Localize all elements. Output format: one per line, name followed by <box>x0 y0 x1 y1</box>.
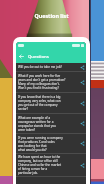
button[interactable]: Back <box>16 49 86 63</box>
button[interactable]: If you know that there is a big <box>16 93 86 114</box>
staticText: If you were running a company <box>18 136 63 140</box>
button[interactable]: Will you be out to take me job? <box>16 63 86 72</box>
other: Share <box>80 121 85 126</box>
staticText: company vary seles, what can <box>18 99 61 103</box>
staticText: was looking for that <box>18 144 47 148</box>
staticText: particular job. <box>18 171 38 175</box>
staticText: Questions <box>28 53 49 59</box>
staticText: what would you do? <box>18 148 47 152</box>
button[interactable]: What if you work here for five <box>16 72 86 93</box>
staticText: courageous written for a <box>18 120 54 124</box>
other: Back <box>19 54 24 59</box>
staticText: you get out of the company <box>18 103 58 107</box>
other: Share <box>80 163 85 168</box>
staticText: sector? <box>18 107 29 111</box>
other: Share <box>80 65 85 70</box>
staticText: Question list <box>34 12 69 19</box>
staticText: company, but our office still <box>18 159 58 163</box>
other: Share <box>80 141 85 146</box>
staticText: unpopular stands that you <box>18 124 56 128</box>
staticText: of hiring a man for a <box>18 167 48 171</box>
staticText: that produces X and sales <box>18 140 55 144</box>
other: Share <box>80 80 85 85</box>
staticText: What if you work here for five <box>18 74 61 78</box>
staticText: Many of my colleagues don't. <box>18 82 60 86</box>
staticText: Chinese and so far the market <box>18 163 62 167</box>
staticText: If you know that there is a big <box>18 95 61 99</box>
other: Share <box>80 101 85 106</box>
staticText: We have spent an hour to the <box>18 155 61 159</box>
staticText: What are example of a <box>18 116 51 120</box>
button[interactable]: If you were running a company <box>16 134 86 154</box>
staticText: Will you be out to take me job? <box>18 65 62 69</box>
staticText: years and don't get a promotion? <box>18 78 66 82</box>
button[interactable]: We have spent an hour to the <box>16 154 86 177</box>
staticText: Won't you find it frustrating? <box>18 86 59 90</box>
button[interactable]: What are example of a <box>16 114 86 134</box>
staticText: were taken? <box>18 128 36 132</box>
